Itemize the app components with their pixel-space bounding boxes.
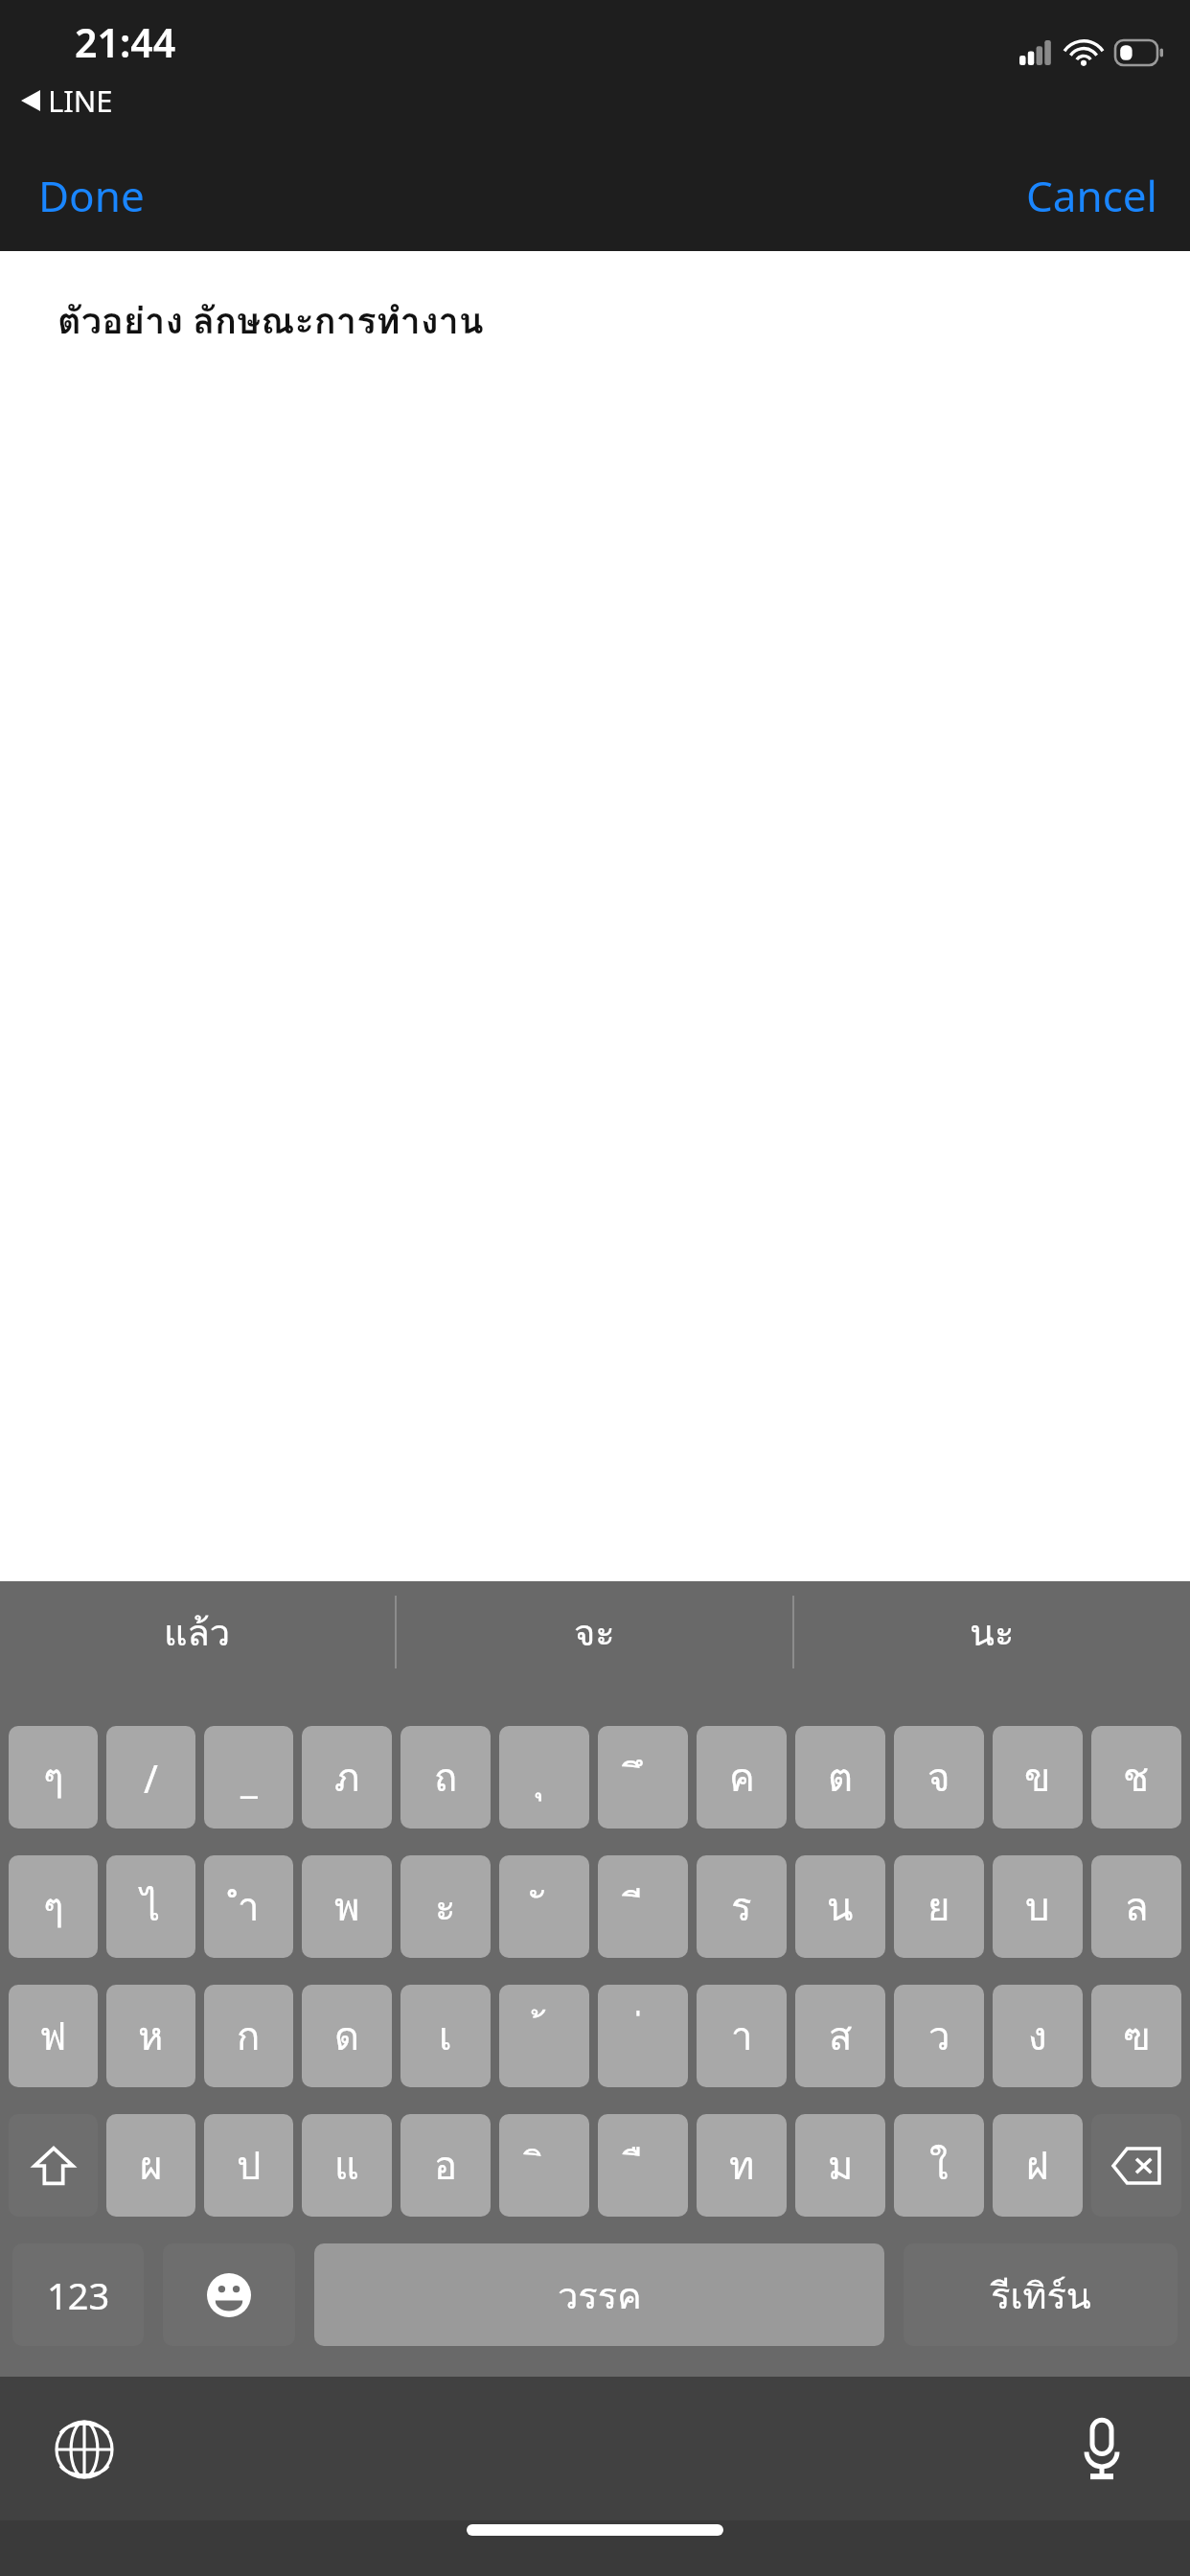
staticText: Cancel (1026, 167, 1157, 224)
button[interactable]: เ (400, 1985, 491, 2087)
staticText: / (144, 1752, 158, 1804)
button[interactable]: จะ (397, 1581, 792, 1682)
button[interactable]: ล (1091, 1855, 1181, 1958)
button[interactable]: ก (204, 1985, 293, 2087)
button[interactable]: บ (993, 1855, 1083, 1958)
staticText: ภ (334, 1747, 360, 1808)
button[interactable]: Backspace (1091, 2114, 1181, 2217)
staticText: ๆ (43, 1876, 64, 1938)
button[interactable]: ่ (598, 1985, 688, 2087)
staticText: ฝ (1026, 2135, 1049, 2196)
staticText: ถ (434, 1747, 458, 1808)
staticText: บ (1025, 1876, 1050, 1938)
button[interactable]: ร (697, 1855, 787, 1958)
staticText: 21:44 (75, 15, 176, 69)
button[interactable]: ื (598, 2114, 688, 2217)
button[interactable]: ฃ (1091, 1985, 1181, 2087)
button[interactable]: จ (894, 1726, 984, 1828)
staticText: ใ (929, 2135, 949, 2196)
button[interactable]: ๆ (9, 1855, 98, 1958)
staticText: ส (829, 2006, 853, 2067)
staticText: น (827, 1876, 854, 1938)
staticText: จะ (574, 1603, 615, 1661)
staticText: วรรค (558, 2266, 642, 2324)
button[interactable]: ิ (499, 2114, 589, 2217)
button[interactable]: แ (302, 2114, 392, 2217)
button[interactable]: ้ (499, 1985, 589, 2087)
button[interactable]: ใ (894, 2114, 984, 2217)
staticText: ข (1024, 1747, 1051, 1808)
button[interactable]: ห (106, 1985, 195, 2087)
button[interactable]: ย (894, 1855, 984, 1958)
button[interactable]: 123 (12, 2243, 144, 2346)
button[interactable]: LINE (17, 79, 117, 123)
staticText: ก (237, 2006, 261, 2067)
button[interactable]: ำ (204, 1855, 293, 1958)
staticText: ไ (141, 1876, 161, 1938)
button[interactable]: ั (499, 1855, 589, 1958)
button[interactable]: Emoji (163, 2243, 295, 2346)
staticText: แล้ว (164, 1603, 231, 1661)
staticText: า (731, 2006, 753, 2067)
staticText: ห (138, 2006, 164, 2067)
button[interactable]: แล้ว (0, 1581, 395, 1682)
button[interactable]: น (795, 1855, 885, 1958)
staticText: Done (38, 167, 145, 224)
button[interactable]: Done (33, 161, 150, 230)
staticText: ำ (238, 1876, 260, 1938)
staticText: ตัวอย่าง ลักษณะการทำงาน (57, 291, 484, 349)
button[interactable]: ท (697, 2114, 787, 2217)
staticText: เ (439, 2006, 452, 2067)
button[interactable]: ช (1091, 1726, 1181, 1828)
button[interactable]: Cancel (1020, 161, 1163, 230)
staticText: _ (240, 1752, 258, 1804)
button[interactable]: _ (204, 1726, 293, 1828)
staticText: ว (928, 2006, 950, 2067)
button[interactable]: ผ (106, 2114, 195, 2217)
button[interactable]: ึ (598, 1726, 688, 1828)
button[interactable]: ง (993, 1985, 1083, 2087)
staticText: ท (729, 2135, 755, 2196)
button[interactable]: นะ (794, 1581, 1190, 1682)
button[interactable]: / (106, 1726, 195, 1828)
button[interactable]: ๆ (9, 1726, 98, 1828)
button[interactable]: ข (993, 1726, 1083, 1828)
button[interactable]: รีเทิร์น (904, 2243, 1178, 2346)
staticText: ค (729, 1747, 755, 1808)
button[interactable]: Shift (9, 2114, 98, 2217)
staticText: แ (334, 2135, 359, 2196)
button[interactable]: ุ (499, 1726, 589, 1828)
staticText: ผ (140, 2135, 163, 2196)
staticText: ด (334, 2006, 359, 2067)
button[interactable]: Dictation (1056, 2403, 1148, 2495)
staticText: ฃ (1123, 2006, 1151, 2067)
staticText: รีเทิร์น (991, 2266, 1091, 2324)
button[interactable]: ว (894, 1985, 984, 2087)
button[interactable]: ฝ (993, 2114, 1083, 2217)
button[interactable]: ี (598, 1855, 688, 1958)
button[interactable]: ป (204, 2114, 293, 2217)
button[interactable]: ค (697, 1726, 787, 1828)
staticText: ฟ (39, 2006, 67, 2067)
button[interactable]: Switch keyboard language (38, 2403, 130, 2495)
button[interactable]: ฟ (9, 1985, 98, 2087)
staticText: LINE (48, 80, 113, 121)
staticText: ม (828, 2135, 854, 2196)
button[interactable]: ะ (400, 1855, 491, 1958)
button[interactable]: อ (400, 2114, 491, 2217)
button[interactable]: ด (302, 1985, 392, 2087)
button[interactable]: ภ (302, 1726, 392, 1828)
button[interactable]: ถ (400, 1726, 491, 1828)
staticText: ะ (435, 1876, 456, 1938)
button[interactable]: ไ (106, 1855, 195, 1958)
button[interactable]: ต (795, 1726, 885, 1828)
button[interactable]: า (697, 1985, 787, 2087)
staticText: จ (927, 1747, 950, 1808)
staticText: ต (828, 1747, 853, 1808)
button[interactable]: ม (795, 2114, 885, 2217)
staticText: ง (1028, 2006, 1047, 2067)
button[interactable]: ส (795, 1985, 885, 2087)
button[interactable]: วรรค (314, 2243, 884, 2346)
staticText: ๆ (43, 1747, 64, 1808)
button[interactable]: พ (302, 1855, 392, 1958)
